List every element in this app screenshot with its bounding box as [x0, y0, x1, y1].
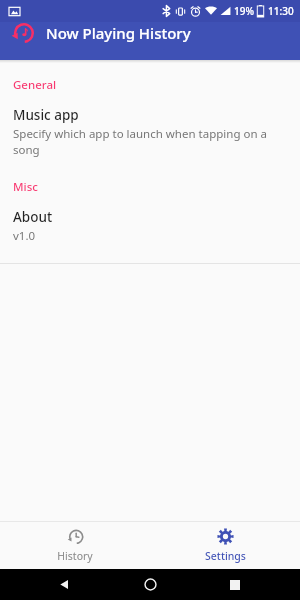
staticText: Specify which app to launch when tapping…	[13, 126, 287, 158]
staticText: About	[13, 208, 53, 226]
button[interactable]: History	[0, 523, 150, 568]
other: Settings	[217, 528, 234, 545]
staticText: History	[57, 549, 93, 563]
staticText: 11:30	[268, 4, 294, 18]
staticText: Misc	[13, 179, 38, 195]
staticText: Settings	[205, 549, 246, 563]
staticText: v1.0	[13, 228, 36, 244]
other: Back	[59, 579, 70, 590]
staticText: General	[13, 77, 57, 93]
button[interactable]: Music app	[0, 95, 300, 163]
button[interactable]: About	[0, 197, 300, 249]
staticText: Music app	[13, 106, 79, 124]
staticText: Now Playing History	[46, 23, 191, 43]
other: Home	[144, 578, 157, 591]
other: History	[67, 528, 84, 545]
staticText: 19%	[234, 4, 254, 18]
button[interactable]: Settings	[150, 523, 300, 568]
